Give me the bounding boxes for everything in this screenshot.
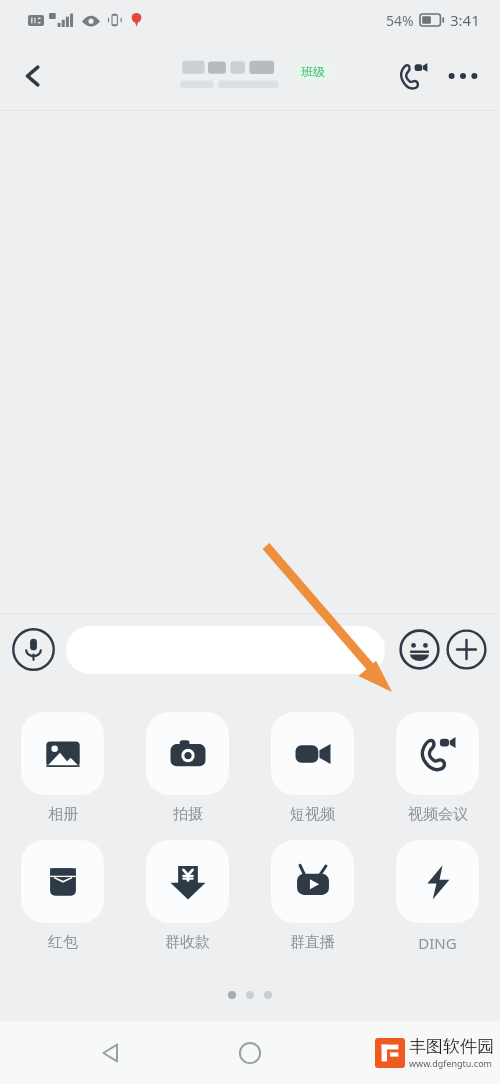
button[interactable]: 群直播 — [250, 840, 375, 952]
staticText: 短视频 — [290, 805, 335, 824]
button[interactable]: DING — [375, 840, 500, 953]
button[interactable] — [66, 626, 385, 674]
button[interactable]: 视频会议 — [375, 712, 500, 824]
staticText: 54% — [386, 11, 414, 30]
staticText: 群直播 — [290, 933, 335, 952]
staticText: 拍摄 — [173, 805, 203, 824]
staticText: www.dgfengtu.com — [409, 1057, 493, 1069]
button[interactable]: More functions — [444, 627, 489, 672]
button[interactable]: Voice input — [11, 627, 56, 672]
staticText: 红包 — [48, 933, 78, 952]
button[interactable]: 拍摄 — [125, 712, 250, 824]
staticText: 视频会议 — [408, 805, 468, 824]
staticText: 群收款 — [165, 933, 210, 952]
button[interactable]: Home — [222, 1025, 278, 1081]
staticText: 丰图软件园 — [409, 1036, 494, 1057]
button[interactable]: 群收款 — [125, 840, 250, 952]
button[interactable]: Back — [6, 49, 60, 103]
staticText: 相册 — [48, 805, 78, 824]
staticText: DING — [418, 933, 457, 953]
button[interactable]: More options — [438, 51, 488, 101]
staticText: 班级 — [301, 64, 325, 79]
button[interactable]: 短视频 — [250, 712, 375, 824]
button[interactable]: Recent apps — [361, 1025, 417, 1081]
button[interactable]: 红包 — [0, 840, 125, 952]
button[interactable]: Video call — [388, 51, 438, 101]
button[interactable]: Emoji — [397, 627, 442, 672]
button[interactable]: Back — [83, 1025, 139, 1081]
button[interactable]: 相册 — [0, 712, 125, 824]
staticText: 3:41 — [450, 10, 480, 30]
